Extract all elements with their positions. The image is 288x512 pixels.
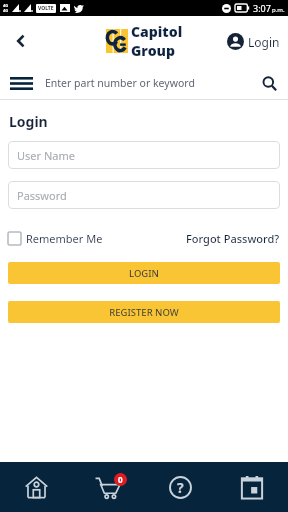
staticText: REGISTER NOW (109, 306, 179, 319)
staticText: Remember Me (26, 231, 103, 246)
staticText: Capitol (131, 22, 183, 41)
button[interactable]: Login (225, 29, 282, 54)
button[interactable]: LOGIN (8, 262, 280, 284)
staticText: 0 (118, 474, 123, 485)
staticText: User Name (17, 148, 75, 163)
button[interactable]: Search (254, 68, 284, 98)
button[interactable]: Help (144, 462, 216, 512)
staticText: Login (9, 112, 48, 131)
staticText: 4G (3, 8, 9, 13)
staticText: Password (17, 188, 67, 203)
staticText: Forgot Password? (186, 231, 280, 246)
staticText: Enter part number or keyword (45, 76, 195, 90)
staticText: LOGIN (129, 267, 159, 280)
staticText: 4G (3, 3, 9, 8)
staticText: 3:07 (253, 2, 271, 14)
staticText: Group (131, 41, 175, 60)
button[interactable]: Menu (4, 69, 38, 97)
button[interactable]: User Name (8, 141, 280, 169)
button[interactable]: Password (8, 181, 280, 209)
staticText: VOLTE (38, 5, 54, 12)
staticText: ? (177, 478, 184, 497)
button[interactable]: REGISTER NOW (8, 301, 280, 323)
button[interactable]: Cart (72, 462, 144, 512)
button[interactable]: Forgot Password? (186, 231, 280, 246)
staticText: p.m. (272, 6, 285, 14)
button[interactable]: Home (0, 462, 72, 512)
staticText: Login (248, 34, 280, 50)
button[interactable]: Remember Me (8, 231, 103, 246)
button[interactable]: Calendar (216, 462, 288, 512)
button[interactable]: Back (0, 20, 42, 62)
